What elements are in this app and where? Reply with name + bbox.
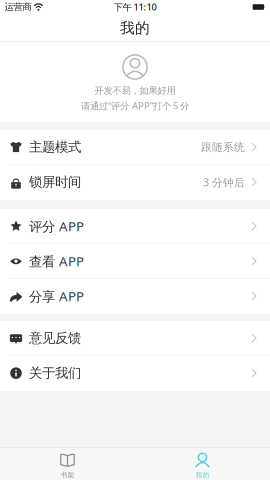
staticText: 关于我们: [29, 365, 81, 381]
staticText: 请通过“评分 APP”打个 5 分: [81, 99, 189, 112]
button[interactable]: 评分 APP: [0, 209, 270, 244]
button[interactable]: 分享 APP: [0, 279, 270, 314]
staticText: 开发不易，如果好用: [94, 85, 175, 96]
button[interactable]: 主题模式: [0, 130, 270, 165]
button[interactable]: 意见反馈: [0, 321, 270, 356]
button[interactable]: 锁屏时间: [0, 165, 270, 200]
staticText: 意见反馈: [29, 330, 81, 346]
staticText: 评分 APP: [29, 217, 84, 235]
staticText: 分享 APP: [29, 287, 84, 305]
staticText: 我的: [120, 19, 150, 37]
staticText: 3 分钟后: [203, 175, 245, 189]
staticText: 查看 APP: [29, 252, 84, 270]
staticText: 运营商: [4, 1, 31, 13]
staticText: 主题模式: [29, 139, 81, 155]
button[interactable]: 书架: [0, 448, 135, 480]
staticText: 锁屏时间: [29, 174, 81, 190]
staticText: 下午 11:10: [113, 1, 156, 13]
staticText: 我的: [195, 471, 209, 479]
button[interactable]: 查看 APP: [0, 244, 270, 279]
staticText: 跟随系统: [201, 141, 245, 154]
button[interactable]: 关于我们: [0, 356, 270, 391]
staticText: 书架: [60, 471, 74, 479]
button[interactable]: 我的: [135, 448, 270, 480]
